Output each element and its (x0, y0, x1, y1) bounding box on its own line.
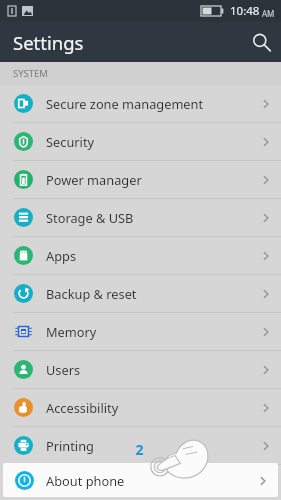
staticText: Power manager (46, 171, 142, 188)
staticText: Secure zone management (46, 95, 204, 112)
button[interactable]: Search (241, 22, 281, 62)
staticText: Accessibility (46, 399, 119, 416)
staticText: 10:48 (230, 3, 260, 19)
button[interactable]: Power manager (0, 161, 281, 198)
staticText: SYSTEM (13, 67, 48, 80)
staticText: 2 (135, 440, 144, 458)
staticText: Security (46, 133, 95, 150)
staticText: Printing (46, 437, 94, 454)
staticText: Storage & USB (46, 209, 134, 226)
button[interactable]: Memory (0, 313, 281, 350)
button[interactable]: Storage & USB (0, 199, 281, 236)
staticText: Backup & reset (46, 285, 137, 302)
staticText: AM (262, 8, 275, 19)
button[interactable]: Secure zone management (0, 85, 281, 122)
button[interactable]: Backup & reset (0, 275, 281, 312)
button[interactable]: Apps (0, 237, 281, 274)
staticText: Users (46, 361, 81, 378)
staticText: Memory (46, 323, 97, 340)
button[interactable]: Printing (0, 427, 281, 464)
button[interactable]: About phone (3, 463, 278, 497)
staticText: About phone (46, 472, 125, 489)
staticText: Settings (13, 30, 84, 55)
button[interactable]: Users (0, 351, 281, 388)
button[interactable]: Security (0, 123, 281, 160)
staticText: Apps (46, 247, 77, 264)
button[interactable]: Accessibility (0, 389, 281, 426)
